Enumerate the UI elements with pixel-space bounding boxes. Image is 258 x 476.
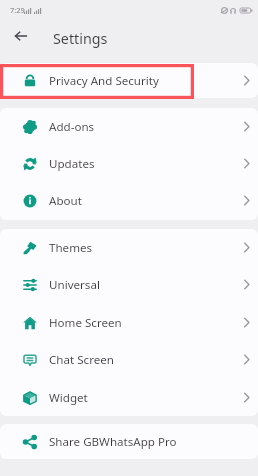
staticText: About: [49, 193, 82, 209]
staticText: Chat Screen: [49, 352, 114, 368]
button[interactable]: Widget: [0, 379, 258, 416]
button[interactable]: Share GBWhatsApp Pro: [0, 424, 258, 459]
staticText: Updates: [49, 156, 95, 172]
button[interactable]: Home Screen: [0, 304, 258, 341]
staticText: Privacy And Security: [49, 73, 159, 89]
staticText: Home Screen: [49, 315, 122, 331]
staticText: Widget: [49, 390, 88, 406]
button[interactable]: About: [0, 182, 258, 219]
button[interactable]: Universal: [0, 266, 258, 303]
button[interactable]: Updates: [0, 145, 258, 182]
button[interactable]: Add-ons: [0, 108, 258, 145]
staticText: Universal: [49, 277, 100, 293]
staticText: Add-ons: [49, 119, 95, 135]
button[interactable]: Themes: [0, 229, 258, 266]
button[interactable]: Chat Screen: [0, 341, 258, 378]
staticText: Share GBWhatsApp Pro: [49, 434, 177, 450]
staticText: Settings: [53, 29, 108, 48]
button[interactable]: Privacy And Security: [0, 63, 258, 98]
staticText: Themes: [49, 240, 93, 256]
button[interactable]: Back: [9, 24, 33, 48]
staticText: 7:29: [10, 5, 25, 15]
